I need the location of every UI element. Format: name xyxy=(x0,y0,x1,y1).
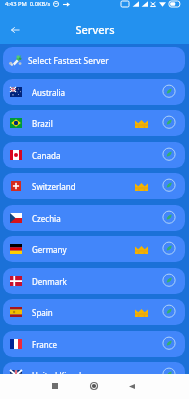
button[interactable]: Denmark xyxy=(3,268,185,294)
button[interactable]: Spain xyxy=(3,299,185,325)
button[interactable]: France xyxy=(3,331,185,357)
staticText: Select Fastest Server xyxy=(28,55,109,66)
button[interactable]: Australia xyxy=(3,79,185,105)
button[interactable]: United Kingdom xyxy=(3,362,185,374)
button[interactable]: Czechia xyxy=(3,205,185,231)
staticText: Brazil xyxy=(32,118,53,129)
staticText: Czechia xyxy=(32,213,61,224)
button[interactable]: Canada xyxy=(3,142,185,168)
button[interactable]: Home xyxy=(83,375,105,397)
staticText: United Kingdom xyxy=(32,370,94,374)
button[interactable]: Brazil xyxy=(3,110,185,136)
staticText: France xyxy=(32,339,58,350)
staticText: 4:43 PM 0.0KB/s xyxy=(5,0,51,8)
staticText: Switzerland xyxy=(32,181,76,192)
button[interactable]: Back xyxy=(5,20,25,40)
button[interactable]: Select Fastest Server xyxy=(3,47,185,73)
button[interactable]: Switzerland xyxy=(3,173,185,199)
staticText: Canada xyxy=(32,150,61,161)
button[interactable]: Recent apps xyxy=(44,375,66,397)
button[interactable]: Back xyxy=(121,375,143,397)
button[interactable]: Germany xyxy=(3,236,185,262)
staticText: Spain xyxy=(32,307,53,318)
staticText: Servers xyxy=(75,22,115,37)
staticText: Australia xyxy=(32,87,66,98)
staticText: Germany xyxy=(32,244,67,255)
staticText: Denmark xyxy=(32,276,67,287)
